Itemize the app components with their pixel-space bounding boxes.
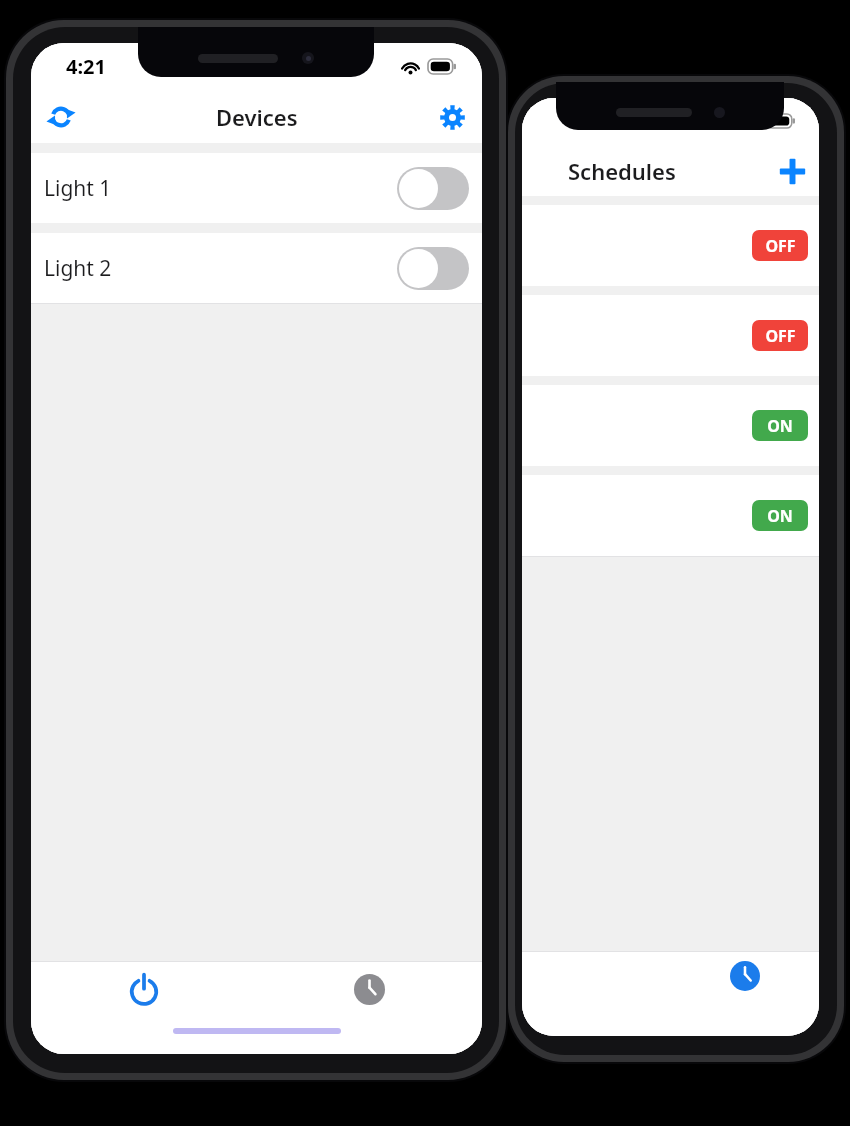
staticText: ON — [767, 415, 793, 437]
button[interactable]: OFF — [752, 230, 808, 261]
button[interactable]: OFF — [522, 295, 819, 376]
staticText: Schedules — [568, 156, 676, 186]
button[interactable]: Devices — [31, 962, 256, 1022]
button[interactable]: Refresh — [39, 95, 83, 139]
staticText: ON — [767, 505, 793, 527]
button[interactable]: Add schedule — [770, 149, 814, 193]
button[interactable]: Light 1 — [31, 153, 482, 223]
staticText: 4:21 — [66, 53, 106, 80]
button[interactable]: ON — [752, 500, 808, 531]
button[interactable]: Schedules — [256, 962, 482, 1022]
button[interactable]: ON — [752, 410, 808, 441]
staticText: OFF — [765, 325, 796, 347]
button[interactable]: ON — [522, 385, 819, 466]
button[interactable]: OFF — [522, 205, 819, 286]
button[interactable] — [397, 247, 469, 290]
button[interactable]: Light 2 — [31, 233, 482, 303]
button[interactable]: ON — [522, 475, 819, 556]
staticText: OFF — [765, 235, 796, 257]
button[interactable] — [397, 167, 469, 210]
button[interactable]: Schedules — [670, 952, 819, 1010]
button[interactable]: Settings — [430, 95, 474, 139]
staticText: Light 2 — [44, 254, 112, 283]
button[interactable]: OFF — [752, 320, 808, 351]
staticText: Devices — [216, 102, 298, 132]
staticText: Light 1 — [44, 174, 112, 203]
